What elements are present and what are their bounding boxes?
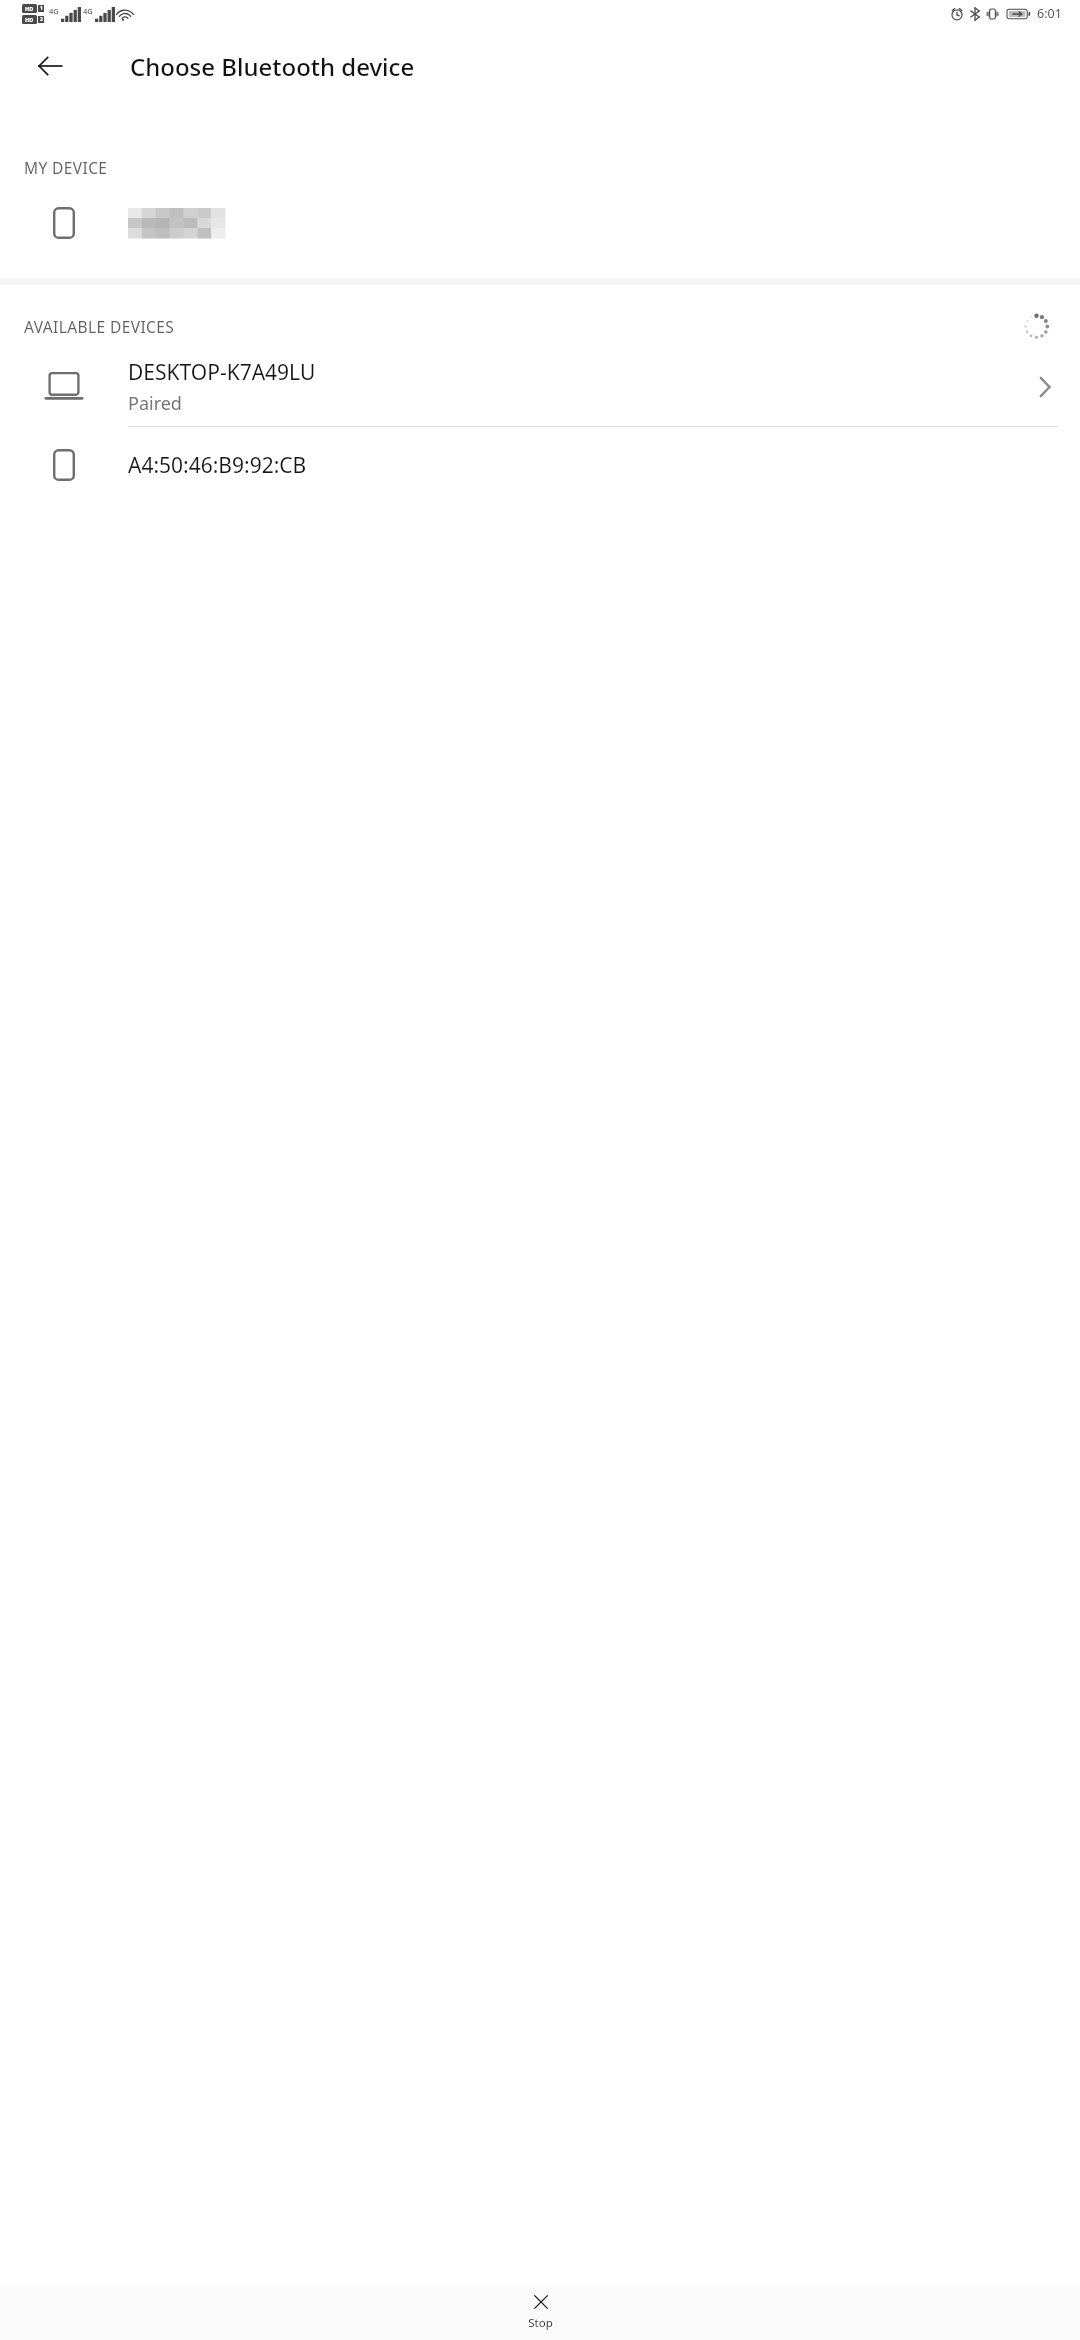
staticText: 1 bbox=[40, 5, 43, 12]
staticText: AVAILABLE DEVICES bbox=[24, 316, 175, 337]
button[interactable]: Stop scanning bbox=[0, 2285, 1080, 2340]
staticText: 2 bbox=[40, 16, 43, 23]
staticText: HD bbox=[25, 5, 34, 12]
staticText: Choose Bluetooth device bbox=[130, 50, 415, 83]
staticText: 4G bbox=[49, 6, 59, 16]
staticText: HD bbox=[25, 16, 34, 23]
other: Scanning bbox=[1019, 309, 1053, 343]
staticText: MY DEVICE bbox=[24, 157, 108, 178]
button[interactable]: A4:50:46:B9:92:CB bbox=[0, 427, 1080, 503]
button[interactable] bbox=[0, 187, 1080, 259]
staticText: Stop bbox=[528, 2315, 553, 2331]
staticText: A4:50:46:B9:92:CB bbox=[128, 451, 307, 480]
staticText: DESKTOP-K7A49LU bbox=[128, 358, 316, 387]
button[interactable]: Back bbox=[26, 42, 74, 90]
button[interactable]: DESKTOP-K7A49LU bbox=[0, 346, 1080, 427]
staticText: Paired bbox=[128, 391, 182, 416]
staticText: 4G bbox=[83, 6, 93, 16]
staticText: 6:01 bbox=[1037, 5, 1062, 22]
